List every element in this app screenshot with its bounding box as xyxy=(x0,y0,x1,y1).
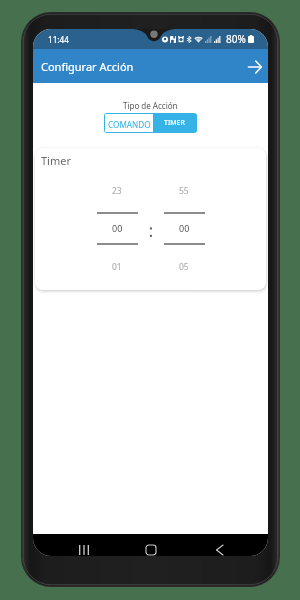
staticText: 11:44 xyxy=(48,34,69,45)
staticText: 80% xyxy=(226,32,246,46)
staticText: COMANDO xyxy=(108,119,151,130)
staticText: Timer xyxy=(41,153,71,168)
button[interactable]: Guardar xyxy=(244,56,266,78)
staticText: Configurar Acción xyxy=(41,59,134,74)
staticText: 05 xyxy=(179,261,189,273)
staticText: TIMER xyxy=(164,118,185,128)
button[interactable]: COMANDO xyxy=(105,114,153,132)
staticText: 00 xyxy=(179,222,190,234)
button[interactable]: Atrás xyxy=(209,539,231,556)
button[interactable]: Recientes xyxy=(73,539,95,556)
staticText: 55 xyxy=(179,185,189,197)
button[interactable]: TIMER xyxy=(153,114,196,132)
staticText: 00 xyxy=(112,222,123,234)
staticText: 01 xyxy=(112,261,122,273)
button[interactable]: Inicio xyxy=(140,539,162,556)
staticText: 23 xyxy=(112,185,122,197)
staticText: Tipo de Acción xyxy=(123,100,178,111)
